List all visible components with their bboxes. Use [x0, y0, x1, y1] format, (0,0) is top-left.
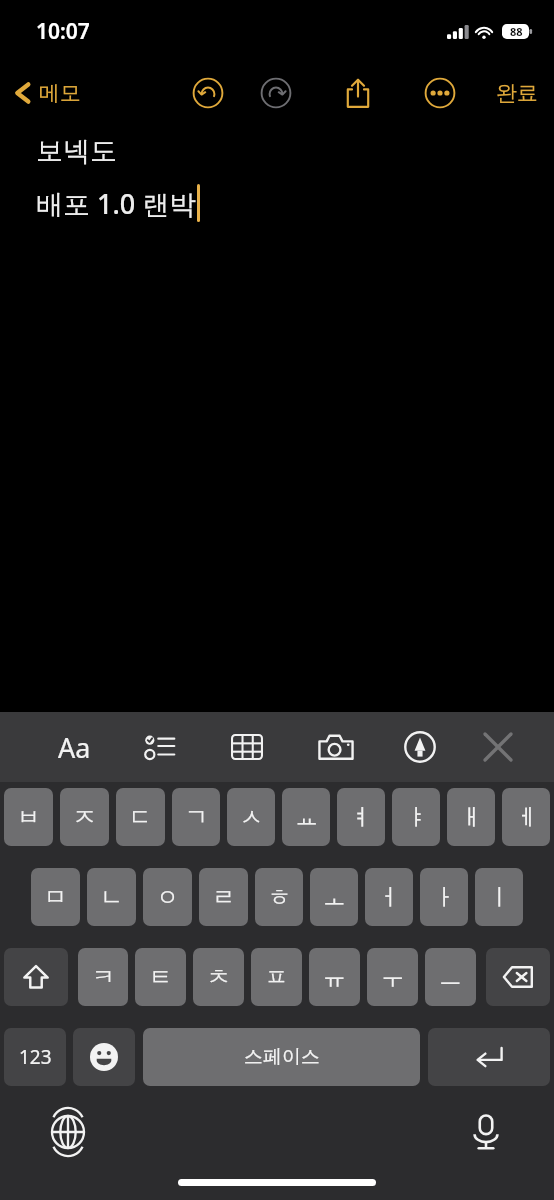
staticText: ㅍ	[265, 963, 288, 992]
staticText: 메모	[39, 80, 81, 106]
staticText: ㅓ	[378, 883, 401, 912]
button[interactable]: Camera	[310, 721, 362, 773]
staticText: ㅂ	[17, 803, 40, 832]
button[interactable]: ㅇ	[143, 868, 192, 926]
staticText: ㅇ	[156, 883, 179, 912]
button[interactable]: ㅡ	[425, 948, 476, 1006]
button[interactable]: ㅌ	[135, 948, 186, 1006]
button[interactable]: ㅍ	[251, 948, 302, 1006]
staticText: ㅑ	[405, 803, 428, 832]
button[interactable]: ㅅ	[227, 788, 275, 846]
staticText: ㅗ	[323, 883, 346, 912]
button[interactable]: Backspace	[486, 948, 550, 1006]
button[interactable]: ㅛ	[282, 788, 330, 846]
staticText: ㄷ	[129, 803, 152, 832]
button[interactable]: ㅏ	[420, 868, 468, 926]
button[interactable]: ㄴ	[87, 868, 136, 926]
staticText: ㄴ	[100, 883, 123, 912]
button[interactable]: ㅋ	[78, 948, 128, 1006]
staticText: ㅕ	[350, 803, 373, 832]
staticText: 배포 1.0 랜박	[36, 185, 197, 222]
button[interactable]: ㅐ	[447, 788, 495, 846]
staticText: ㅠ	[323, 963, 346, 992]
button[interactable]: 완료	[496, 80, 538, 106]
staticText: ㅋ	[92, 963, 115, 992]
staticText: 완료	[496, 80, 538, 106]
staticText: ㅡ	[439, 963, 462, 992]
staticText: ㅣ	[488, 883, 511, 912]
staticText: 88	[510, 24, 523, 39]
button[interactable]: 123	[4, 1028, 66, 1086]
button[interactable]: ㅎ	[255, 868, 303, 926]
button[interactable]: ㄱ	[172, 788, 220, 846]
button[interactable]: ㅗ	[310, 868, 358, 926]
staticText: Aa	[58, 729, 91, 766]
button[interactable]: ㅁ	[31, 868, 80, 926]
button[interactable]: Table	[221, 721, 273, 773]
button[interactable]: Shift	[4, 948, 68, 1006]
staticText: 스페이스	[244, 1045, 320, 1069]
staticText: 10:07	[36, 17, 90, 46]
button[interactable]: ㄹ	[199, 868, 248, 926]
button[interactable]: ㅓ	[365, 868, 413, 926]
button[interactable]: ㅔ	[502, 788, 550, 846]
staticText: 123	[19, 1044, 52, 1070]
button[interactable]: Redo	[254, 71, 298, 115]
button[interactable]: Format	[48, 721, 100, 773]
button[interactable]: More	[418, 71, 462, 115]
button[interactable]: ㅂ	[4, 788, 53, 846]
button[interactable]: Undo	[186, 71, 230, 115]
staticText: ㅈ	[73, 803, 96, 832]
button[interactable]: Dictate	[460, 1106, 512, 1158]
button[interactable]: ㅣ	[475, 868, 523, 926]
button[interactable]: Close keyboard	[472, 721, 524, 773]
button[interactable]: ㅑ	[392, 788, 440, 846]
button[interactable]: ㅊ	[193, 948, 244, 1006]
button[interactable]: Switch keyboard	[42, 1106, 94, 1158]
button[interactable]: ㅈ	[60, 788, 109, 846]
staticText: ㅛ	[295, 803, 318, 832]
staticText: ㄹ	[212, 883, 235, 912]
button[interactable]: Return	[428, 1028, 550, 1086]
staticText: ㅌ	[149, 963, 172, 992]
button[interactable]: ㅜ	[367, 948, 418, 1006]
staticText: ㅔ	[515, 803, 538, 832]
button[interactable]: ㅠ	[309, 948, 360, 1006]
staticText: ㄱ	[185, 803, 208, 832]
staticText: 보넥도	[36, 134, 117, 168]
staticText: ㅊ	[207, 963, 230, 992]
staticText: ㅜ	[381, 963, 404, 992]
button[interactable]: Emoji	[73, 1028, 135, 1086]
button[interactable]: ㅕ	[337, 788, 385, 846]
button[interactable]: Checklist	[134, 721, 186, 773]
button[interactable]: Markup	[394, 721, 446, 773]
staticText: ㅏ	[433, 883, 456, 912]
staticText: ㅐ	[460, 803, 483, 832]
button[interactable]: 메모	[12, 80, 81, 106]
button[interactable]: 스페이스	[143, 1028, 420, 1086]
button[interactable]: Share	[336, 71, 380, 115]
staticText: ㅁ	[44, 883, 67, 912]
staticText: ㅅ	[240, 803, 263, 832]
staticText: ㅎ	[268, 883, 291, 912]
button[interactable]: ㄷ	[116, 788, 165, 846]
